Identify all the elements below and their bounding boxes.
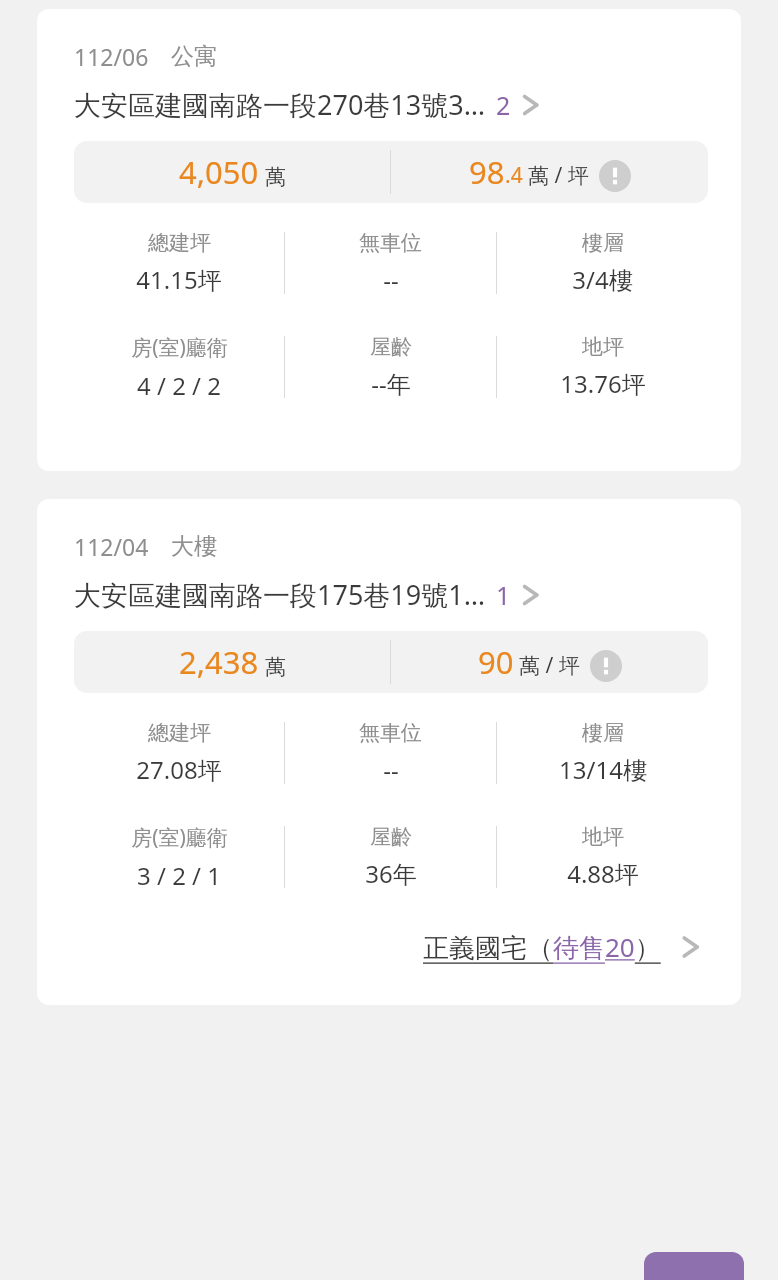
staticText: 4.88坪	[567, 857, 639, 890]
staticText: 3/4樓	[572, 263, 633, 296]
button[interactable]: 價格說明	[599, 160, 631, 192]
staticText: 36年	[365, 857, 417, 890]
staticText: 萬	[265, 654, 286, 680]
staticText: 大樓	[171, 532, 217, 561]
button[interactable]: 大安區建國南路一段175巷19號1…	[74, 576, 708, 613]
staticText: 樓層	[582, 720, 624, 746]
button[interactable]: 2,438	[74, 631, 708, 693]
staticText: 大安區建國南路一段175巷19號1…	[74, 576, 486, 613]
staticText: 112/04	[74, 531, 149, 562]
staticText: 屋齡	[370, 334, 412, 360]
staticText: 房(室)廳衛	[131, 823, 228, 852]
staticText: 地坪	[582, 334, 624, 360]
button[interactable]: 大安區建國南路一段270巷13號3…	[74, 86, 708, 123]
staticText: 3 / 2 / 1	[137, 859, 221, 892]
button[interactable]: 更多	[644, 1252, 744, 1280]
staticText: 41.15坪	[136, 263, 222, 296]
staticText: 大安區建國南路一段270巷13號3…	[74, 86, 486, 123]
staticText: --年	[371, 367, 411, 400]
staticText: 13/14樓	[559, 753, 647, 786]
staticText: 2	[496, 88, 511, 122]
staticText: 房(室)廳衛	[131, 333, 228, 362]
staticText: 無車位	[359, 720, 422, 746]
staticText: 90	[478, 641, 514, 683]
staticText: .4	[505, 161, 523, 190]
staticText: --	[383, 263, 399, 296]
staticText: 4,050	[179, 151, 259, 193]
staticText: 1	[496, 578, 511, 612]
button[interactable]: 價格說明	[590, 650, 622, 682]
staticText: 4 / 2 / 2	[137, 369, 221, 402]
staticText: 地坪	[582, 824, 624, 850]
staticText: 13.76坪	[560, 367, 646, 400]
staticText: 總建坪	[148, 720, 211, 746]
staticText: 樓層	[582, 230, 624, 256]
button[interactable]: 4,050	[74, 141, 708, 203]
button[interactable]: 正義國宅（待售20）	[74, 929, 708, 965]
staticText: 98	[469, 151, 505, 193]
staticText: 正義國宅（待售20）	[423, 929, 668, 965]
staticText: 27.08坪	[136, 753, 222, 786]
staticText: 無車位	[359, 230, 422, 256]
staticText: 總建坪	[148, 230, 211, 256]
staticText: 萬	[265, 164, 286, 190]
staticText: --	[383, 753, 399, 786]
staticText: 萬 / 坪	[528, 161, 589, 190]
staticText: 萬 / 坪	[519, 651, 580, 680]
staticText: 112/06	[74, 41, 149, 72]
staticText: 2,438	[179, 641, 259, 683]
staticText: 屋齡	[370, 824, 412, 850]
staticText: 公寓	[171, 42, 217, 71]
